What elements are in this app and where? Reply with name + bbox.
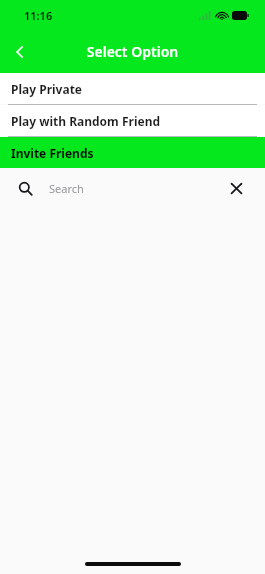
button[interactable]: Clear search xyxy=(225,177,247,199)
button[interactable]: Search xyxy=(0,168,265,208)
staticText: Search xyxy=(49,181,225,196)
staticText: Invite Friends xyxy=(11,145,94,161)
staticText: Play with Random Friend xyxy=(11,113,161,129)
button[interactable]: Invite Friends xyxy=(0,137,265,168)
staticText: 11:16 xyxy=(24,8,53,23)
button[interactable]: Play Private xyxy=(0,73,265,104)
staticText: Select Option xyxy=(0,42,265,61)
button[interactable]: Back xyxy=(0,32,40,72)
button[interactable]: Play with Random Friend xyxy=(0,105,265,136)
staticText: Play Private xyxy=(11,81,83,97)
